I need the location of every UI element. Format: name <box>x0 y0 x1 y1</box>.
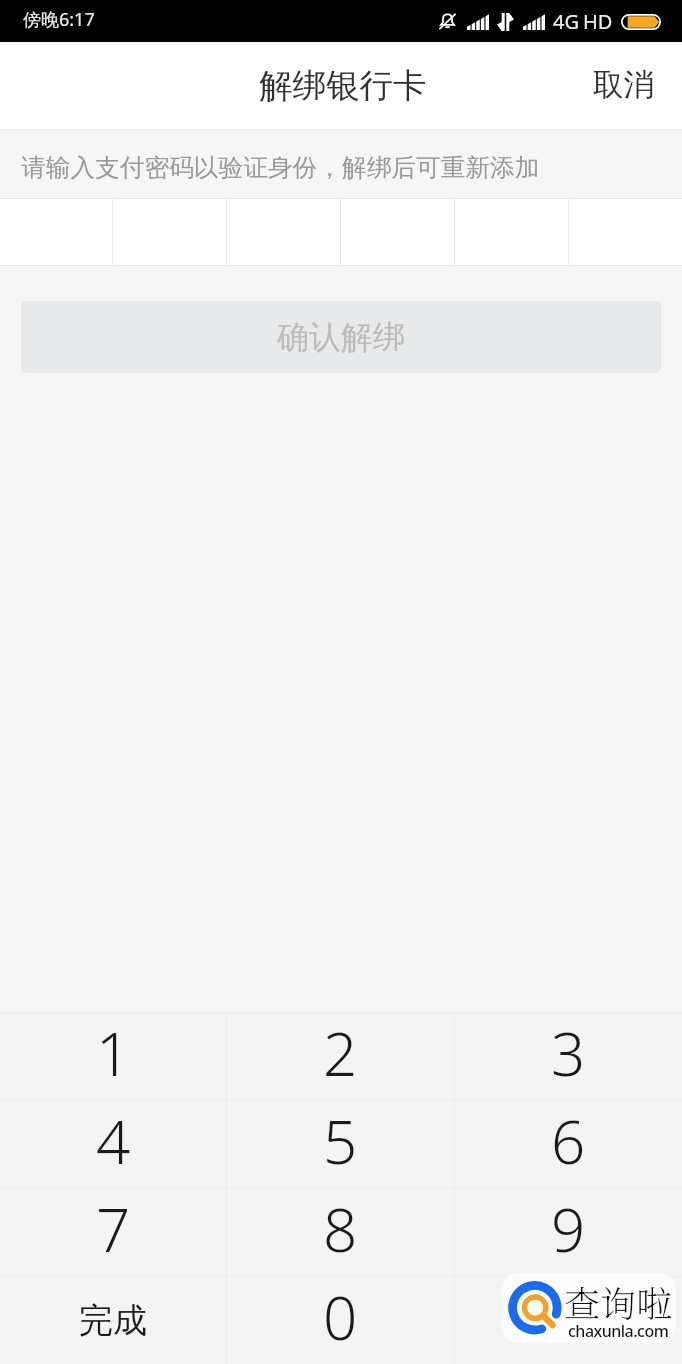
staticText: 7 <box>96 1188 131 1270</box>
button[interactable]: 7 <box>0 1189 226 1276</box>
staticText: 0 <box>323 1276 358 1358</box>
button[interactable]: 5 <box>227 1101 454 1188</box>
staticText: 取消 <box>593 66 654 104</box>
button[interactable]: 1 <box>0 1013 226 1100</box>
staticText: 完成 <box>79 1299 147 1342</box>
staticText: 4 <box>96 1100 131 1182</box>
staticText: 1 <box>96 1012 131 1094</box>
button[interactable]: 完成 <box>0 1277 226 1364</box>
staticText: 请输入支付密码以验证身份，解绑后可重新添加 <box>21 152 540 183</box>
staticText: 傍晚6:17 <box>23 7 95 32</box>
staticText: 4G <box>553 8 579 35</box>
staticText: 确认解绑 <box>277 317 405 357</box>
button[interactable]: 取消 <box>563 42 682 129</box>
button[interactable]: 8 <box>227 1189 454 1276</box>
button[interactable]: 3 <box>455 1013 682 1100</box>
staticText: 8 <box>323 1188 358 1270</box>
staticText: 9 <box>551 1188 586 1270</box>
button[interactable]: 0 <box>227 1277 454 1364</box>
staticText: HD <box>583 8 613 35</box>
staticText: 解绑银行卡 <box>259 65 427 107</box>
staticText: 5 <box>323 1100 358 1182</box>
button[interactable]: 2 <box>227 1013 454 1100</box>
staticText: chaxunla.com <box>568 1320 669 1342</box>
button[interactable]: Delete <box>455 1277 682 1364</box>
staticText: 3 <box>551 1012 586 1094</box>
button[interactable]: 确认解绑 <box>21 301 661 373</box>
button[interactable]: 4 <box>0 1101 226 1188</box>
button[interactable]: 9 <box>455 1189 682 1276</box>
staticText: 2 <box>323 1012 358 1094</box>
staticText: 6 <box>551 1100 586 1182</box>
staticText: 查询啦 <box>564 1276 673 1328</box>
button[interactable]: 6 <box>455 1101 682 1188</box>
